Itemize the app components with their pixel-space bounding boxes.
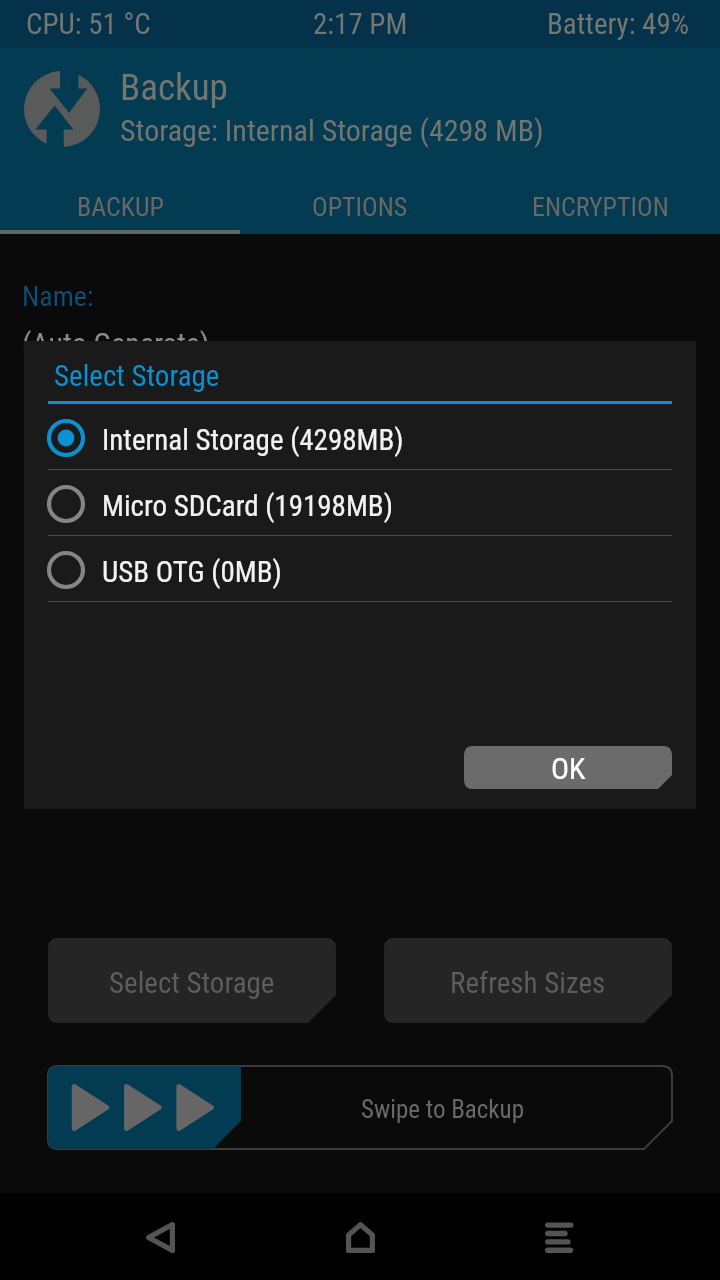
button[interactable]: Refresh Sizes (384, 938, 672, 1023)
button[interactable]: BACKUP (0, 184, 240, 230)
button[interactable]: OPTIONS (240, 184, 480, 230)
staticText: BACKUP (77, 192, 164, 222)
button[interactable]: Home (310, 1193, 410, 1280)
staticText: OK (551, 751, 586, 786)
staticText: (Auto Generate) (22, 326, 210, 361)
button[interactable]: OK (464, 746, 672, 789)
staticText: Storage: Internal Storage (4298 MB) (120, 113, 544, 148)
button[interactable]: Swipe to Backup (48, 1066, 672, 1149)
staticText: 2:17 PM (313, 7, 408, 41)
staticText: Select Storage (109, 966, 275, 1000)
button[interactable]: ENCRYPTION (480, 184, 720, 230)
staticText: Name: (22, 280, 94, 313)
staticText: Battery: 49% (547, 7, 690, 41)
staticText: OPTIONS (312, 192, 408, 222)
button[interactable]: Menu (510, 1193, 610, 1280)
button[interactable]: Internal Storage (4298MB) (24, 404, 696, 469)
button[interactable]: USB OTG (0MB) (24, 536, 696, 601)
button[interactable]: Micro SDCard (19198MB) (24, 470, 696, 535)
staticText: Backup (120, 66, 228, 109)
button[interactable]: Select Storage (48, 938, 336, 1023)
staticText: Internal Storage (4298MB) (102, 423, 404, 457)
button[interactable]: Back (110, 1193, 210, 1280)
staticText: Select Storage (54, 359, 220, 393)
staticText: Micro SDCard (19198MB) (102, 489, 393, 523)
staticText: Refresh Sizes (450, 966, 606, 1000)
staticText: ENCRYPTION (532, 192, 669, 222)
staticText: CPU: 51 °C (26, 7, 151, 41)
staticText: USB OTG (0MB) (102, 555, 282, 589)
staticText: Swipe to Backup (361, 1095, 525, 1124)
